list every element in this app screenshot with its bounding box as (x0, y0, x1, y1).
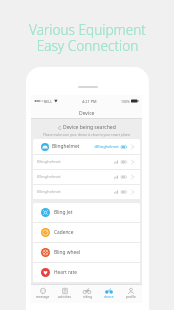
button[interactable]: message (31, 284, 54, 303)
staticText: Blinghelmet (37, 159, 61, 165)
button[interactable]: Cadence (33, 223, 140, 242)
button[interactable]: activities (54, 284, 76, 303)
button[interactable]: Blinghelmet (33, 139, 140, 154)
button[interactable]: Bling Jet (33, 203, 140, 222)
staticText: Please make sure your device is close to… (43, 133, 131, 137)
staticText: device (104, 295, 114, 299)
staticText: BELL (44, 99, 53, 104)
staticText: Device (79, 110, 95, 117)
staticText: Blinghelmet (96, 144, 119, 149)
staticText: Cadence (54, 229, 74, 236)
button[interactable]: Blinghelmet (33, 185, 140, 199)
button[interactable]: Bling wheel (33, 243, 140, 262)
staticText: profile (126, 295, 136, 299)
staticText: Heart rate (54, 269, 77, 276)
button[interactable]: device (98, 284, 120, 303)
staticText: Various Equipment Easy Connection (29, 20, 146, 55)
staticText: Device being searched (63, 124, 116, 131)
button[interactable]: Blinghelmet (33, 170, 140, 184)
staticText: 100% (121, 99, 130, 104)
staticText: activities (58, 295, 72, 299)
staticText: message (36, 295, 50, 299)
staticText: Blinghelmet (37, 189, 61, 195)
button[interactable]: Blinghelmet (33, 155, 140, 169)
staticText: Bling wheel (54, 249, 81, 256)
button[interactable]: riding (76, 284, 98, 303)
staticText: Bling Jet (54, 209, 73, 216)
button[interactable]: profile (120, 284, 142, 303)
button[interactable]: Heart rate (33, 263, 140, 282)
staticText: Blinghelmet (52, 143, 80, 150)
staticText: riding (83, 295, 92, 299)
staticText: 4:21 PM (82, 99, 97, 104)
staticText: Blinghelmet (37, 174, 61, 180)
